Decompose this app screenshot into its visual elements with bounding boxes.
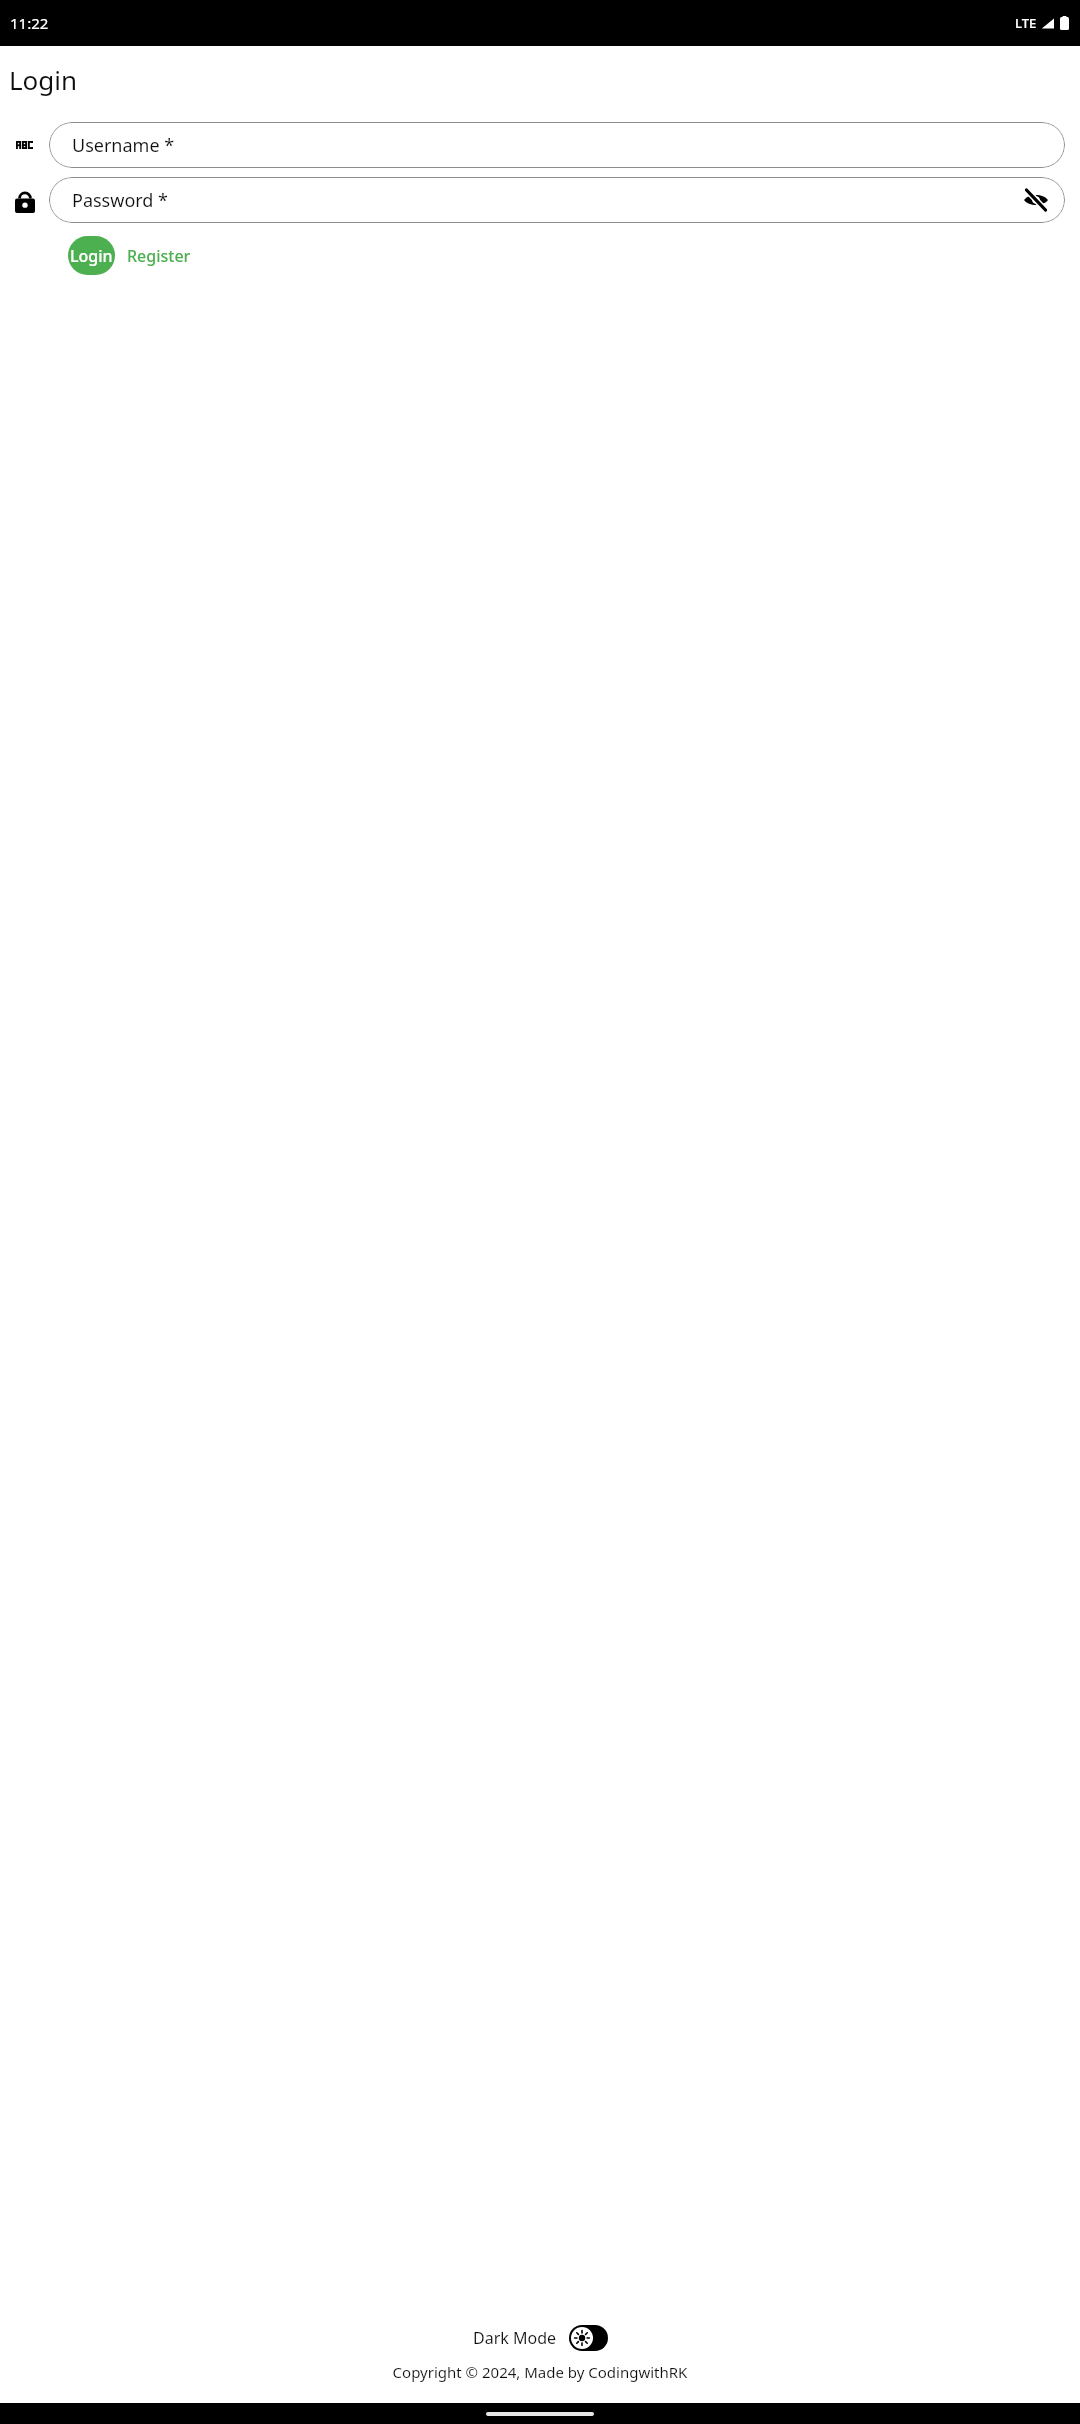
button[interactable]: Dark mode toggle — [569, 2325, 608, 2351]
staticText: Password * — [72, 188, 169, 213]
staticText: Dark Mode — [473, 2327, 557, 2349]
staticText: Register — [127, 245, 191, 267]
staticText: Copyright © 2024, Made by CodingwithRK — [0, 2362, 1080, 2382]
staticText: 11:22 — [10, 13, 49, 33]
button[interactable]: Register — [115, 237, 203, 275]
button[interactable]: Show password — [1019, 183, 1053, 217]
staticText: Login — [9, 62, 78, 97]
staticText: Login — [70, 245, 113, 267]
button[interactable]: Password * — [49, 177, 1065, 223]
staticText: LTE — [1015, 14, 1037, 32]
button[interactable]: Username * — [49, 122, 1065, 168]
staticText: Username * — [72, 133, 175, 158]
button[interactable]: Login — [68, 236, 115, 275]
